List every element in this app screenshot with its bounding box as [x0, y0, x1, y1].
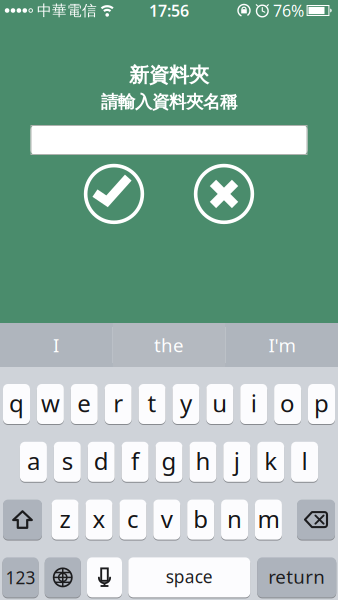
- staticText: o: [280, 387, 295, 419]
- staticText: m: [257, 503, 279, 535]
- staticText: the: [154, 333, 184, 357]
- button[interactable]: w: [37, 384, 64, 424]
- button[interactable]: z: [52, 500, 79, 540]
- staticText: r: [113, 387, 123, 419]
- button[interactable]: b: [187, 500, 214, 540]
- button[interactable]: m: [255, 500, 282, 540]
- staticText: z: [60, 503, 71, 535]
- staticText: 請輸入資料夾名稱: [101, 91, 237, 113]
- button[interactable]: x: [85, 500, 112, 540]
- staticText: k: [264, 445, 277, 477]
- staticText: 17:56: [149, 0, 189, 21]
- button[interactable]: i: [240, 384, 267, 424]
- button[interactable]: Next keyboard: [45, 557, 81, 597]
- button[interactable]: Dictate: [87, 557, 122, 597]
- button[interactable]: Confirm: [84, 164, 144, 224]
- button[interactable]: Shift: [3, 500, 42, 540]
- staticText: h: [195, 445, 210, 477]
- staticText: I: [53, 333, 59, 357]
- button[interactable]: the: [113, 323, 225, 367]
- button[interactable]: g: [155, 442, 182, 482]
- button[interactable]: Cancel: [194, 164, 254, 224]
- button[interactable]: u: [206, 384, 233, 424]
- staticText: j: [234, 445, 240, 477]
- button[interactable]: d: [88, 442, 115, 482]
- button[interactable]: p: [308, 384, 335, 424]
- button[interactable]: v: [153, 500, 180, 540]
- staticText: q: [9, 387, 24, 419]
- button[interactable]: c: [119, 500, 146, 540]
- button[interactable]: r: [105, 384, 132, 424]
- button[interactable]: I'm: [226, 323, 338, 367]
- staticText: d: [94, 445, 109, 477]
- staticText: 新資料夾: [129, 63, 209, 87]
- staticText: p: [314, 387, 329, 419]
- button[interactable]: j: [223, 442, 250, 482]
- staticText: y: [180, 387, 192, 419]
- button[interactable]: Delete: [297, 500, 335, 540]
- button[interactable]: o: [274, 384, 301, 424]
- button[interactable]: a: [20, 442, 47, 482]
- button[interactable]: q: [3, 384, 30, 424]
- staticText: f: [131, 445, 139, 477]
- staticText: return: [268, 564, 325, 589]
- button[interactable]: I: [0, 323, 112, 367]
- staticText: space: [166, 565, 213, 588]
- staticText: n: [227, 503, 242, 535]
- button[interactable]: k: [257, 442, 284, 482]
- button[interactable]: space: [128, 557, 250, 597]
- staticText: i: [251, 387, 257, 419]
- button[interactable]: e: [71, 384, 98, 424]
- staticText: 123: [5, 566, 35, 589]
- button[interactable]: h: [189, 442, 216, 482]
- staticText: 中華電信: [37, 1, 97, 19]
- button[interactable]: 123: [2, 557, 38, 597]
- button[interactable]: f: [122, 442, 149, 482]
- staticText: u: [212, 387, 227, 419]
- staticText: g: [161, 445, 176, 477]
- staticText: l: [302, 445, 308, 477]
- staticText: s: [62, 445, 73, 477]
- button[interactable]: n: [221, 500, 248, 540]
- staticText: b: [193, 503, 208, 535]
- button[interactable]: 資料夾名稱: [30, 125, 307, 155]
- button[interactable]: s: [54, 442, 81, 482]
- staticText: e: [77, 387, 91, 419]
- button[interactable]: l: [291, 442, 318, 482]
- button[interactable]: y: [172, 384, 199, 424]
- staticText: I'm: [268, 333, 295, 357]
- staticText: t: [148, 387, 157, 419]
- staticText: a: [27, 445, 40, 477]
- staticText: c: [127, 503, 139, 535]
- button[interactable]: t: [139, 384, 166, 424]
- staticText: x: [92, 503, 105, 535]
- staticText: 76%: [273, 0, 304, 21]
- button[interactable]: return: [257, 557, 336, 597]
- staticText: v: [161, 503, 173, 535]
- staticText: w: [41, 387, 60, 419]
